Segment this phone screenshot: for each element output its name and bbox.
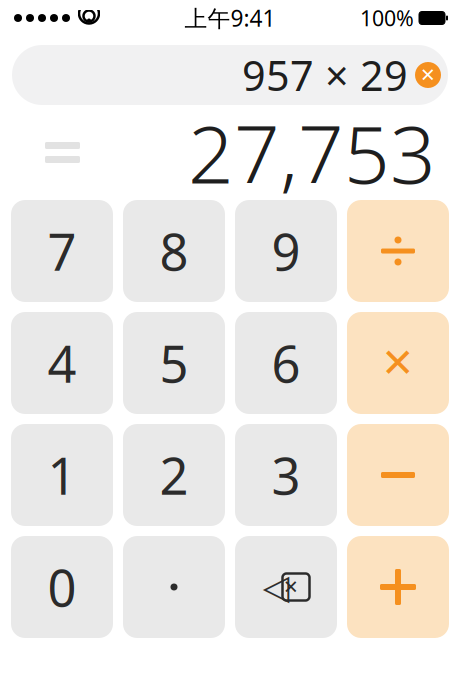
button[interactable]: 0 bbox=[11, 536, 113, 638]
button[interactable]: Clear expression bbox=[408, 51, 448, 99]
button[interactable]: 1 bbox=[11, 424, 113, 526]
staticText: 1 bbox=[47, 441, 76, 509]
staticText: ✕ bbox=[420, 64, 436, 86]
button[interactable]: Delete bbox=[235, 536, 337, 638]
button[interactable]: 3 bbox=[235, 424, 337, 526]
staticText: ✕ bbox=[381, 340, 415, 386]
button[interactable]: 9 bbox=[235, 200, 337, 302]
button[interactable]: Decimal point bbox=[123, 536, 225, 638]
staticText: 上午9:41 bbox=[184, 3, 275, 33]
button[interactable]: 6 bbox=[235, 312, 337, 414]
button[interactable]: 8 bbox=[123, 200, 225, 302]
staticText: 6 bbox=[271, 329, 300, 397]
staticText: 2 bbox=[159, 441, 188, 509]
staticText: 7 bbox=[47, 217, 76, 285]
staticText: 9 bbox=[271, 217, 300, 285]
button[interactable]: 2 bbox=[123, 424, 225, 526]
staticText: 4 bbox=[47, 329, 76, 397]
button[interactable]: 5 bbox=[123, 312, 225, 414]
staticText: 3 bbox=[271, 441, 300, 509]
staticText: 100% bbox=[360, 4, 414, 32]
button[interactable]: Divide bbox=[347, 200, 449, 302]
staticText: 8 bbox=[159, 217, 188, 285]
staticText: 5 bbox=[159, 329, 188, 397]
button[interactable]: 7 bbox=[11, 200, 113, 302]
button[interactable]: Add bbox=[347, 536, 449, 638]
staticText: 27,753 bbox=[188, 99, 436, 206]
staticText: 0 bbox=[47, 553, 76, 621]
button[interactable]: 4 bbox=[11, 312, 113, 414]
staticText: ✕ bbox=[283, 576, 299, 598]
button[interactable]: Multiply bbox=[347, 312, 449, 414]
staticText: 957 × 29 bbox=[242, 48, 408, 102]
staticText: ◁ bbox=[262, 567, 289, 607]
button[interactable]: Subtract bbox=[347, 424, 449, 526]
